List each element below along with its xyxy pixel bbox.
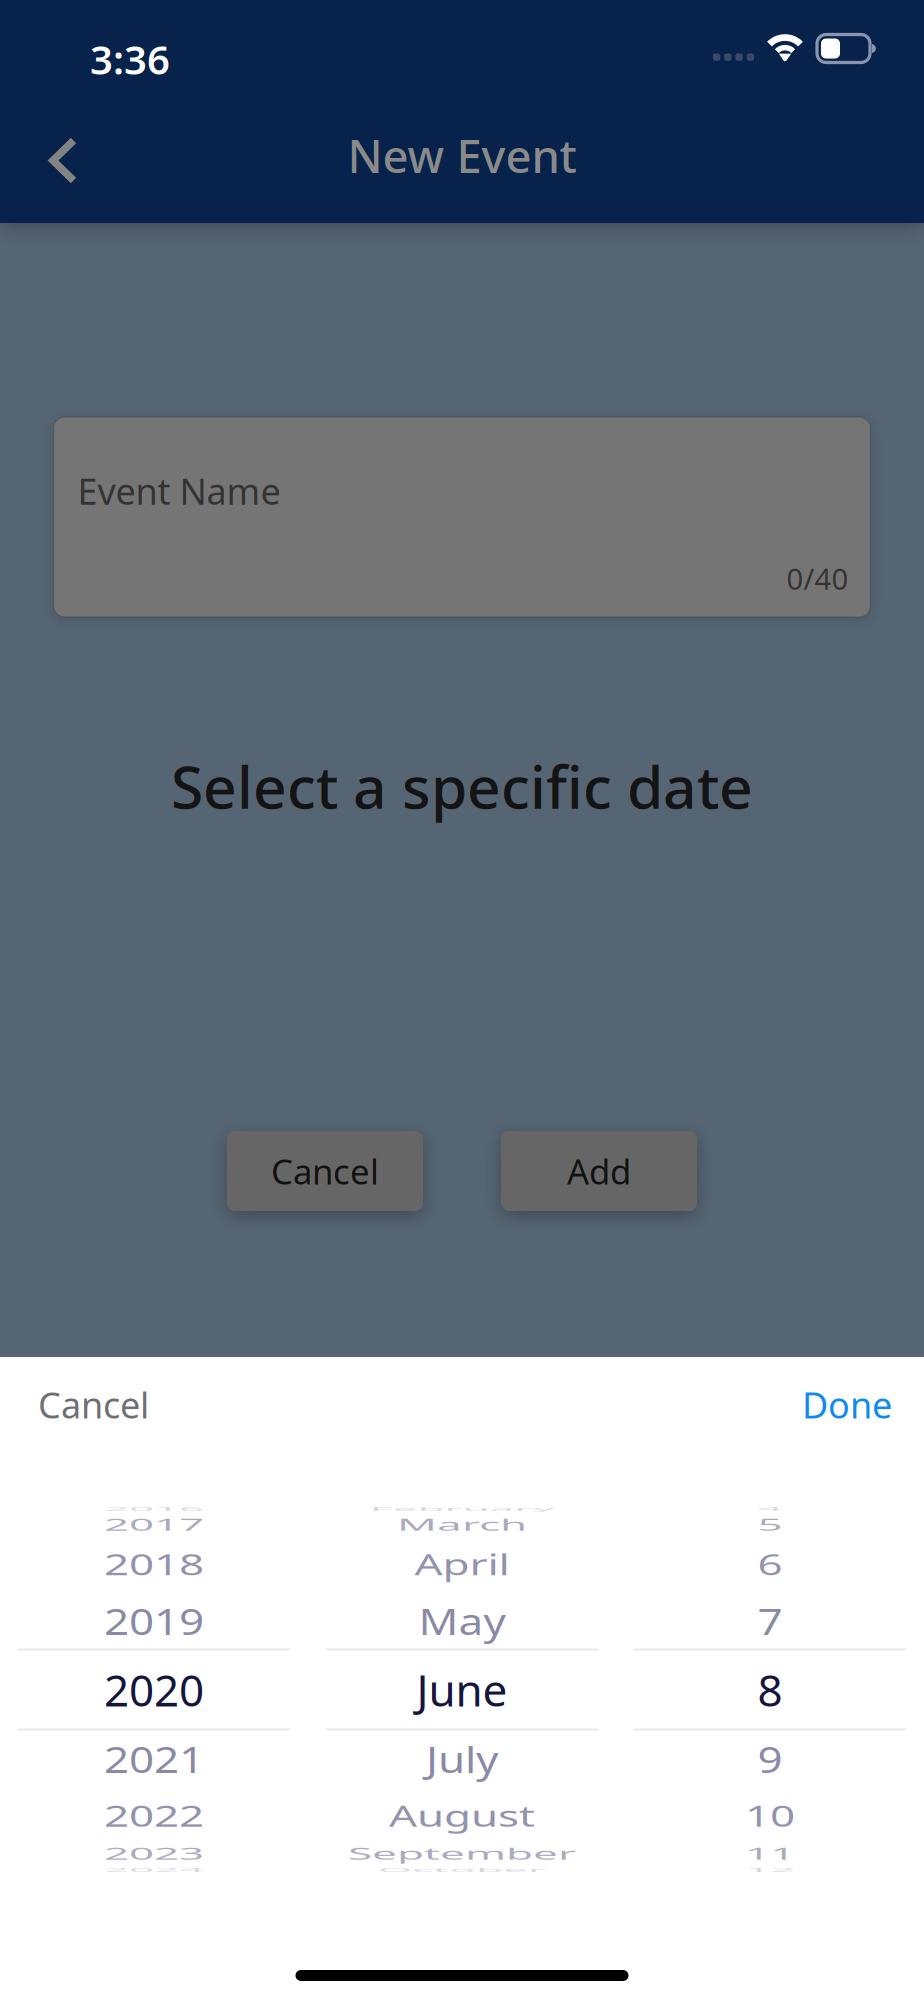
- button[interactable]: Add: [501, 1131, 697, 1211]
- button[interactable]: Cancel: [0, 1363, 173, 1446]
- staticText: September: [348, 1824, 576, 1883]
- staticText: 2021: [104, 1729, 204, 1788]
- staticText: February: [369, 1479, 554, 1538]
- staticText: New Event: [347, 125, 576, 186]
- button[interactable]: Back: [15, 108, 111, 212]
- staticText: 7: [757, 1591, 782, 1650]
- staticText: 10: [745, 1786, 795, 1845]
- staticText: Cancel: [271, 1148, 379, 1194]
- staticText: 12: [745, 1840, 795, 1899]
- staticText: October: [378, 1840, 546, 1899]
- button[interactable]: Done: [778, 1363, 924, 1446]
- staticText: Select a specific date: [171, 747, 753, 825]
- staticText: Cancel: [38, 1381, 149, 1428]
- staticText: Event Name: [77, 467, 280, 515]
- staticText: 2018: [104, 1535, 204, 1593]
- staticText: 11: [745, 1824, 795, 1883]
- staticText: 2020: [104, 1660, 204, 1719]
- staticText: March: [397, 1495, 527, 1554]
- staticText: 8: [757, 1660, 782, 1719]
- staticText: August: [389, 1786, 535, 1845]
- staticText: 0/40: [786, 559, 848, 598]
- staticText: May: [418, 1591, 505, 1650]
- staticText: Done: [802, 1381, 892, 1428]
- staticText: June: [416, 1660, 507, 1719]
- staticText: 9: [757, 1729, 782, 1788]
- staticText: 2022: [104, 1786, 204, 1845]
- staticText: 6: [757, 1535, 782, 1593]
- staticText: Add: [567, 1148, 631, 1194]
- staticText: 2024: [104, 1840, 204, 1899]
- staticText: 2023: [104, 1824, 204, 1883]
- staticText: July: [426, 1729, 498, 1788]
- staticText: 4: [757, 1479, 782, 1538]
- staticText: 2016: [104, 1479, 204, 1538]
- staticText: April: [414, 1535, 509, 1593]
- staticText: 3:36: [90, 32, 170, 86]
- button[interactable]: Cancel: [227, 1131, 423, 1211]
- staticText: 5: [757, 1495, 782, 1554]
- staticText: 2017: [104, 1495, 204, 1554]
- staticText: 2019: [104, 1591, 204, 1650]
